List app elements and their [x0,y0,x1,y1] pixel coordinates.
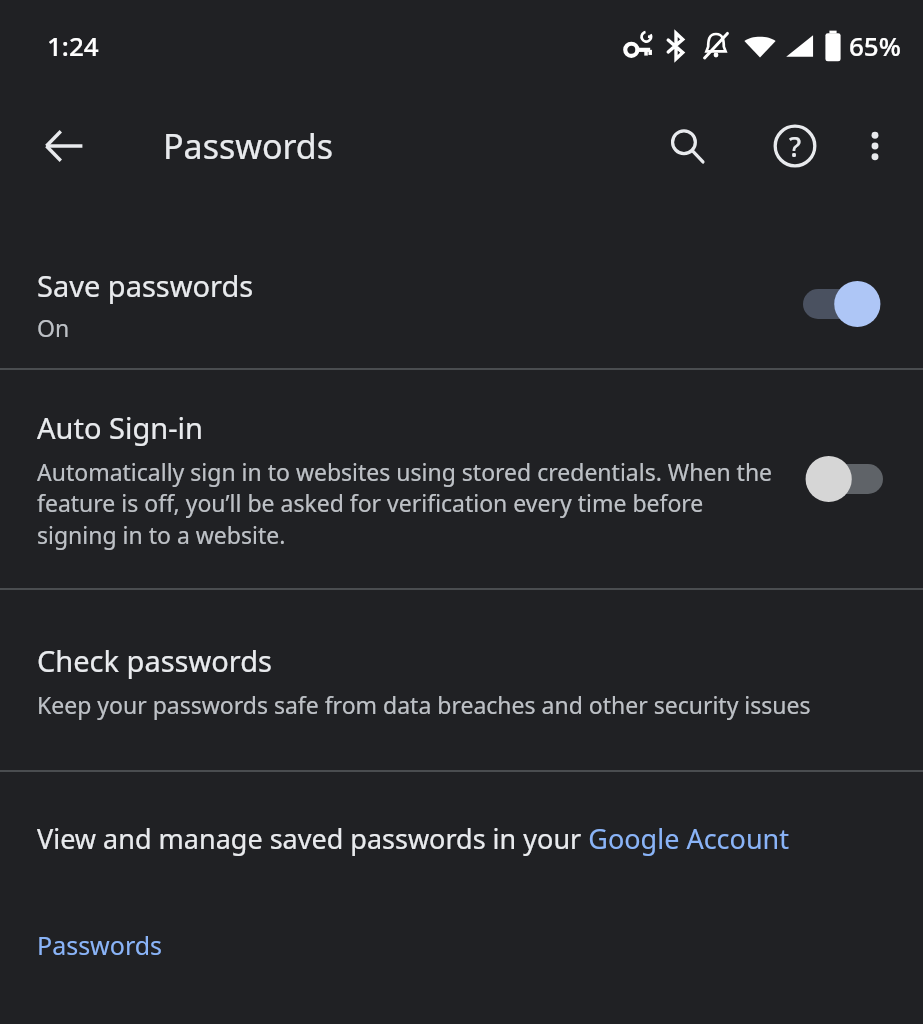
button[interactable] [803,274,895,334]
staticText: Save passwords [37,266,254,305]
staticText: Auto Sign-in [37,408,203,447]
staticText: On [37,312,70,343]
staticText: View and manage saved passwords in your … [37,820,790,857]
button[interactable]: View and manage saved passwords in your … [0,816,923,861]
button[interactable]: Check passwords [0,590,923,770]
staticText: Keep your passwords safe from data breac… [37,689,811,720]
button[interactable]: More options [839,110,911,182]
button[interactable]: Search [649,108,725,184]
button[interactable]: Auto Sign-in [0,370,923,588]
button[interactable]: Back [26,108,102,184]
button[interactable]: Help [757,108,833,184]
button[interactable]: Save passwords [0,240,923,368]
button[interactable]: Passwords [0,924,183,966]
staticText: Passwords [163,123,334,169]
button[interactable] [791,449,883,509]
staticText: Automatically sign in to websites using … [37,456,781,551]
staticText: ? [789,128,802,165]
staticText: Passwords [37,928,163,962]
staticText: Check passwords [37,641,272,680]
staticText: 65% [849,28,901,63]
staticText: 1:24 [47,28,99,63]
